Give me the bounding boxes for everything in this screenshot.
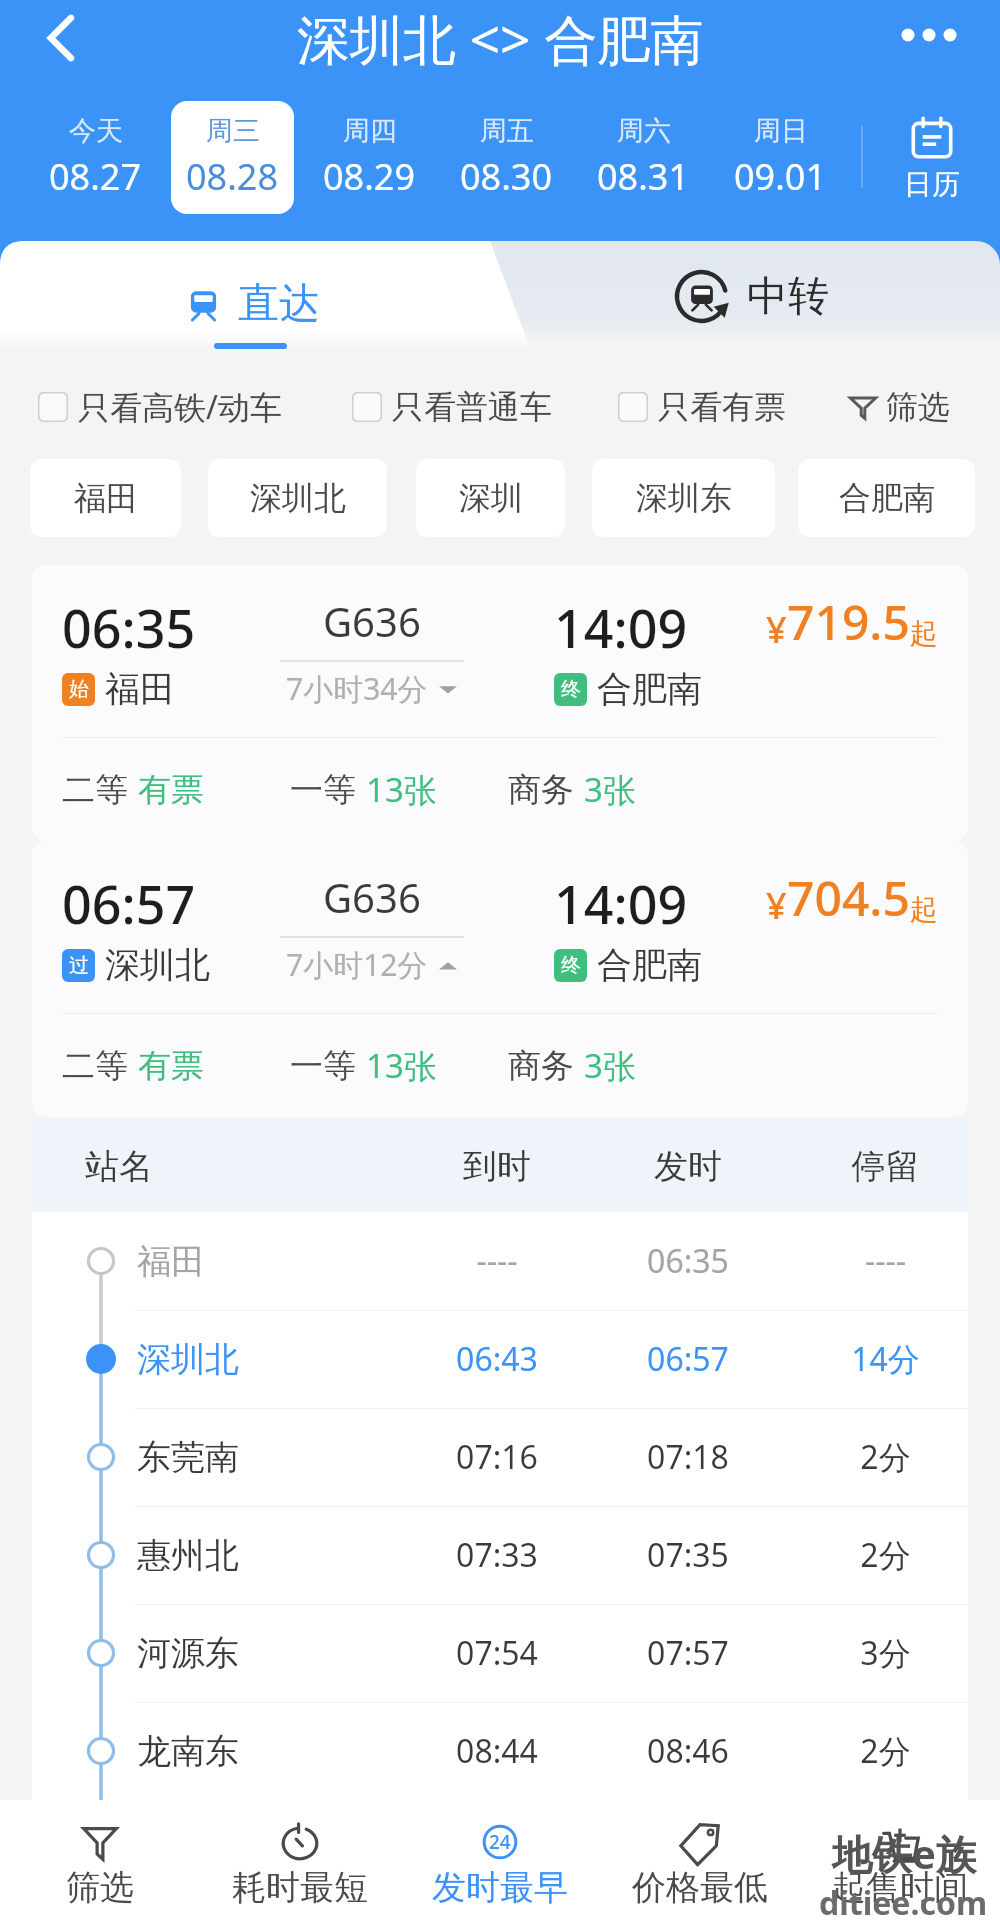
staticText: 筛选	[66, 1866, 134, 1909]
button[interactable]: 周日	[719, 101, 842, 214]
staticText: 只看高铁/动车	[78, 385, 282, 429]
staticText: 耗时最短	[232, 1866, 368, 1909]
staticText: 08.27	[49, 152, 142, 201]
staticText: 起售时间	[832, 1866, 968, 1909]
button[interactable]: 周三	[171, 101, 294, 214]
button[interactable]: 24	[400, 1800, 600, 1927]
staticText: 06:57	[62, 868, 196, 939]
button[interactable]: 价格最低	[600, 1800, 800, 1927]
staticText: 深圳北 <> 合肥南	[297, 2, 704, 74]
staticText: 07:18	[603, 1435, 773, 1479]
staticText: 深圳	[459, 478, 523, 518]
staticText: 3张	[584, 767, 636, 812]
button[interactable]: More options	[893, 2, 965, 74]
staticText: 08:46	[603, 1729, 773, 1773]
button[interactable]: 中转	[500, 241, 1000, 353]
staticText: 福田	[74, 478, 138, 518]
button[interactable]: 日历	[864, 113, 1000, 202]
staticText: 08.30	[460, 152, 553, 201]
staticText: 13张	[366, 1043, 437, 1088]
staticText: 深圳北	[250, 478, 346, 518]
staticText: 中转	[747, 271, 829, 323]
staticText: 704.5	[787, 865, 910, 930]
staticText: 周五	[480, 114, 534, 148]
staticText: 719.5	[787, 589, 910, 654]
staticText: 合肥南	[597, 943, 702, 987]
staticText: 09.01	[734, 152, 827, 201]
button[interactable]: 深圳东	[592, 459, 775, 537]
staticText: 只看普通车	[392, 387, 552, 427]
button[interactable]: 周五	[445, 101, 568, 214]
staticText: 2分	[803, 1533, 968, 1577]
staticText: 商务	[508, 1045, 574, 1087]
staticText: 24	[489, 1829, 511, 1855]
staticText: 始	[69, 677, 89, 702]
staticText: ----	[803, 1239, 968, 1283]
staticText: 有票	[138, 1045, 204, 1087]
staticText: 08:44	[412, 1729, 582, 1773]
button[interactable]: 06:35	[32, 565, 968, 841]
staticText: 只看有票	[658, 387, 786, 427]
staticText: 到时	[412, 1145, 582, 1188]
button[interactable]: 深圳	[416, 459, 565, 537]
button[interactable]: 06:57	[32, 841, 968, 1117]
button[interactable]: 只看有票	[618, 387, 786, 427]
staticText: 周四	[343, 114, 397, 148]
button[interactable]: 深圳北	[208, 459, 387, 537]
button[interactable]: 耗时最短	[200, 1800, 400, 1927]
button[interactable]: 周四	[308, 101, 431, 214]
staticText: 起	[910, 616, 938, 651]
button[interactable]: 直达	[0, 241, 500, 353]
button[interactable]: 筛选	[848, 387, 950, 427]
staticText: 14:09	[554, 868, 688, 939]
staticText: 一等	[290, 769, 356, 811]
staticText: 08.29	[323, 152, 416, 201]
button[interactable]: 起售时间	[800, 1800, 1000, 1927]
staticText: 06:57	[603, 1337, 773, 1381]
staticText: 3分	[803, 1631, 968, 1675]
staticText: ¥	[766, 881, 787, 930]
staticText: 起	[910, 892, 938, 927]
button[interactable]: Back	[34, 10, 90, 66]
staticText: 发时最早	[432, 1866, 568, 1909]
button[interactable]: 只看普通车	[352, 387, 552, 427]
button[interactable]: 周六	[582, 101, 705, 214]
staticText: G636	[323, 870, 421, 924]
button[interactable]: 只看高铁/动车	[38, 385, 282, 429]
staticText: 7小时12分	[286, 944, 428, 985]
staticText: 龙南东	[137, 1730, 239, 1773]
staticText: 东莞南	[137, 1436, 239, 1479]
button[interactable]: 福田	[30, 459, 181, 537]
staticText: 福田	[137, 1240, 205, 1283]
staticText: 终	[561, 953, 581, 978]
staticText: 合肥南	[839, 478, 935, 518]
staticText: 商务	[508, 769, 574, 811]
staticText: 14:09	[554, 592, 688, 663]
staticText: 福田	[105, 667, 175, 711]
staticText: 08.28	[186, 152, 279, 201]
staticText: 08.31	[597, 152, 690, 201]
staticText: 07:16	[412, 1435, 582, 1479]
staticText: 7小时34分	[286, 668, 428, 709]
staticText: 今天	[69, 114, 123, 148]
staticText: 终	[561, 677, 581, 702]
staticText: 河源东	[137, 1632, 239, 1675]
staticText: 惠州北	[137, 1534, 239, 1577]
button[interactable]: 今天	[34, 101, 157, 214]
staticText: 价格最低	[632, 1866, 768, 1909]
staticText: 过	[69, 953, 89, 978]
staticText: 14分	[803, 1337, 968, 1381]
button[interactable]: 筛选	[0, 1800, 200, 1927]
staticText: 深圳北	[105, 943, 210, 987]
staticText: 合肥南	[597, 667, 702, 711]
staticText: 有票	[138, 769, 204, 811]
staticText: 发时	[603, 1145, 773, 1188]
staticText: 深圳北	[137, 1338, 239, 1381]
staticText: 2分	[803, 1435, 968, 1479]
staticText: 地铁e族	[832, 1826, 976, 1881]
staticText: 日历	[904, 167, 960, 202]
staticText: 直达	[238, 278, 320, 330]
button[interactable]: 合肥南	[798, 459, 975, 537]
staticText: 06:35	[62, 592, 196, 663]
staticText: 07:57	[603, 1631, 773, 1675]
